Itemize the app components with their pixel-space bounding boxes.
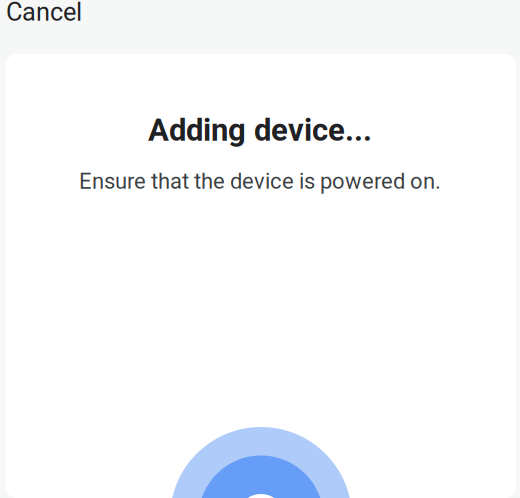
staticText: Ensure that the device is powered on. — [79, 168, 441, 194]
button[interactable]: Cancel — [0, 0, 96, 32]
staticText: Cancel — [6, 0, 82, 27]
staticText: Adding device... — [148, 112, 372, 148]
